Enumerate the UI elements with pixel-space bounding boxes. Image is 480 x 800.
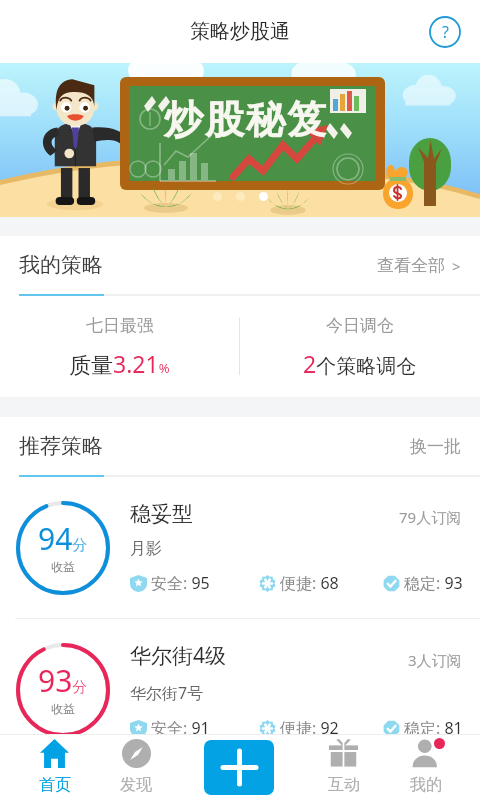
button[interactable]: 首页 [0, 734, 109, 800]
staticText: 华尔街4级 [130, 641, 227, 670]
staticText: 稳妥型 [130, 501, 193, 527]
staticText: 收益 [51, 701, 75, 716]
staticText: 发现 [120, 775, 152, 795]
staticText: 月影 [130, 539, 162, 559]
staticText: 79人订阅 [399, 507, 462, 527]
staticText: 93分 [38, 660, 88, 701]
button[interactable]: 查看全部 [377, 255, 461, 276]
staticText: 七日最强 [86, 315, 154, 336]
staticText: 策略炒股通 [190, 19, 290, 44]
staticText: 便捷: 68 [280, 572, 339, 594]
button[interactable]: 93分 [0, 619, 480, 760]
button[interactable]: 发现 [109, 734, 163, 800]
staticText: 换一批 [410, 436, 461, 457]
staticText: 首页 [39, 775, 71, 795]
staticText: 2个策略调仓 [303, 348, 417, 379]
staticText: 华尔街7号 [130, 682, 204, 704]
button[interactable]: Add [204, 740, 274, 795]
staticText: ? [442, 21, 449, 43]
staticText: 收益 [51, 559, 75, 574]
staticText: 稳定: 81 [404, 717, 463, 739]
staticText: 94分 [38, 518, 88, 559]
staticText: 查看全部 [377, 255, 445, 276]
staticText: 便捷: 92 [280, 717, 339, 739]
button[interactable]: 今日调仓 [240, 296, 480, 397]
staticText: 炒股秘笈 [163, 95, 327, 144]
staticText: 今日调仓 [326, 315, 394, 336]
staticText: 我的 [410, 775, 442, 795]
button[interactable]: 我的 [372, 734, 480, 800]
staticText: 安全: 91 [151, 717, 210, 739]
staticText: > [452, 256, 461, 276]
staticText: 质量3.21% [69, 348, 170, 379]
button[interactable]: 互动 [315, 734, 372, 800]
button[interactable]: Help [428, 15, 462, 49]
staticText: 稳定: 93 [404, 572, 463, 594]
button[interactable]: 换一批 [410, 436, 461, 457]
staticText: 我的策略 [19, 252, 103, 278]
button[interactable]: 七日最强 [0, 296, 239, 397]
staticText: 互动 [328, 775, 360, 795]
staticText: 3人订阅 [408, 650, 462, 670]
button[interactable]: 94分 [0, 477, 480, 618]
staticText: 推荐策略 [19, 433, 103, 459]
staticText: 安全: 95 [151, 572, 210, 594]
